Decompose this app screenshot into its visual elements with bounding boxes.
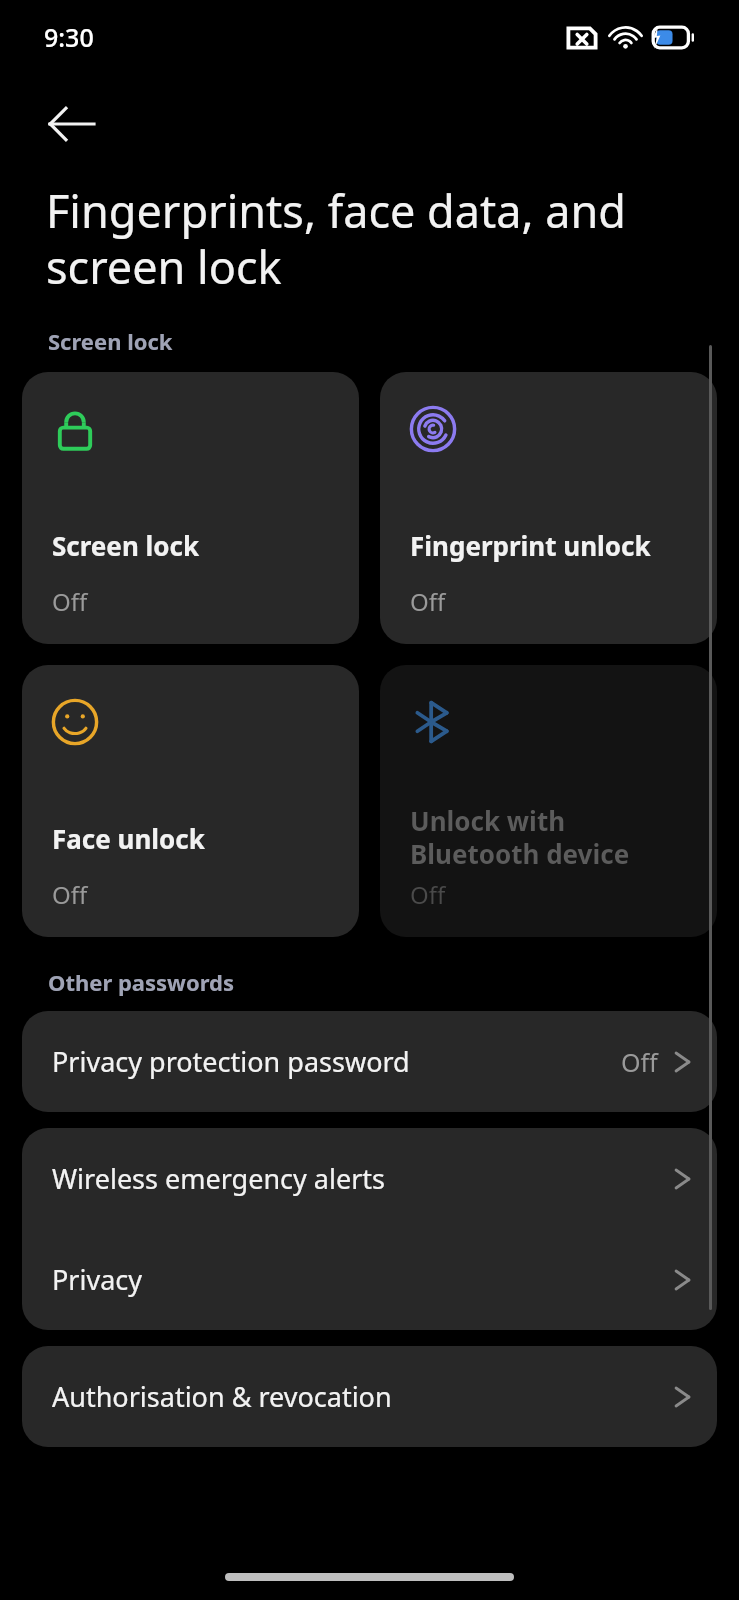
button[interactable]: Privacy protection password	[22, 1011, 717, 1112]
button[interactable]: Screen lock	[22, 372, 359, 644]
staticText: Screen lock	[52, 528, 200, 563]
button[interactable]: Privacy	[22, 1229, 717, 1330]
staticText: Off	[52, 878, 88, 911]
button[interactable]: Face unlock	[22, 665, 359, 937]
button[interactable]: Authorisation & revocation	[22, 1346, 717, 1447]
staticText: Off	[410, 585, 446, 618]
staticText: Privacy protection password	[52, 1043, 621, 1080]
staticText: Fingerprints, face data, and screen lock	[46, 180, 669, 297]
staticText: Privacy	[52, 1261, 674, 1298]
staticText: Fingerprint unlock	[410, 528, 651, 563]
button[interactable]: Fingerprint unlock	[380, 372, 717, 644]
staticText: Other passwords	[48, 967, 235, 997]
staticText: Face unlock	[52, 821, 205, 856]
staticText: Screen lock	[48, 326, 173, 356]
staticText: Off	[410, 878, 446, 911]
button[interactable]: Wireless emergency alerts	[22, 1128, 717, 1229]
staticText: Off	[52, 585, 88, 618]
staticText: Wireless emergency alerts	[52, 1160, 674, 1197]
staticText: 9:30	[44, 20, 94, 54]
staticText: Unlock with Bluetooth device	[410, 803, 630, 872]
button[interactable]: Back	[22, 74, 120, 174]
button[interactable]: Unlock with Bluetooth device	[380, 665, 717, 937]
staticText: Authorisation & revocation	[52, 1378, 674, 1415]
staticText: Off	[621, 1045, 658, 1079]
